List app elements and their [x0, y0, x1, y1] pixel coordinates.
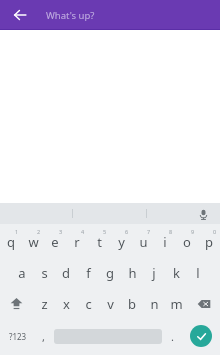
button[interactable]: n	[143, 288, 165, 319]
staticText: t	[97, 233, 102, 251]
staticText: 2	[37, 228, 41, 235]
staticText: p	[205, 233, 213, 251]
staticText: 8	[169, 228, 173, 235]
button[interactable]: ?123	[0, 319, 35, 353]
staticText: g	[106, 264, 114, 282]
button[interactable]: Shift	[0, 288, 33, 319]
button[interactable]: u	[132, 226, 154, 257]
staticText: f	[86, 264, 91, 282]
button[interactable]: g	[99, 257, 121, 288]
staticText: z	[41, 295, 48, 313]
button[interactable]: v	[99, 288, 121, 319]
staticText: 0	[213, 228, 217, 235]
staticText: b	[128, 295, 136, 313]
staticText: l	[196, 264, 200, 282]
staticText: n	[150, 295, 159, 313]
staticText: e	[51, 233, 59, 251]
button[interactable]: p	[198, 226, 220, 257]
button[interactable]: w	[22, 226, 44, 257]
staticText: h	[128, 264, 137, 282]
staticText: q	[7, 233, 15, 251]
staticText: 5	[103, 228, 107, 235]
button[interactable]: h	[121, 257, 143, 288]
staticText: r	[74, 233, 80, 251]
staticText: 9	[191, 228, 195, 235]
button[interactable]: a	[11, 257, 33, 288]
staticText: u	[139, 233, 148, 251]
staticText: d	[62, 264, 70, 282]
staticText: What's up?	[46, 9, 95, 22]
staticText: o	[183, 233, 191, 251]
staticText: 1	[15, 228, 19, 235]
button[interactable]: s	[33, 257, 55, 288]
button[interactable]: t	[88, 226, 110, 257]
button[interactable]: z	[33, 288, 55, 319]
staticText: 4	[81, 228, 85, 235]
button[interactable]: f	[77, 257, 99, 288]
staticText: 7	[147, 228, 151, 235]
staticText: ,	[42, 329, 45, 344]
staticText: 6	[125, 228, 129, 235]
staticText: 3	[59, 228, 63, 235]
button[interactable]: e	[44, 226, 66, 257]
button[interactable]: b	[121, 288, 143, 319]
button[interactable]: y	[110, 226, 132, 257]
staticText: m	[170, 295, 183, 313]
staticText: i	[163, 233, 167, 251]
button[interactable]: c	[77, 288, 99, 319]
staticText: .	[171, 329, 174, 344]
staticText: x	[63, 295, 70, 313]
button[interactable]: Send	[181, 319, 220, 353]
staticText: s	[41, 264, 48, 282]
button[interactable]: o	[176, 226, 198, 257]
button[interactable]: i	[154, 226, 176, 257]
button[interactable]: j	[143, 257, 165, 288]
button[interactable]: Backspace	[187, 288, 220, 319]
button[interactable]: r	[66, 226, 88, 257]
button[interactable]: d	[55, 257, 77, 288]
button[interactable]	[147, 203, 220, 224]
button[interactable]: ,	[35, 319, 52, 353]
button[interactable]: x	[55, 288, 77, 319]
staticText: j	[152, 264, 156, 282]
button[interactable]: q	[0, 226, 22, 257]
button[interactable]: m	[165, 288, 187, 319]
staticText: ?123	[9, 331, 27, 342]
staticText: a	[18, 264, 26, 282]
button[interactable]: .	[164, 319, 181, 353]
button[interactable]: Back	[6, 1, 34, 29]
staticText: w	[28, 233, 39, 251]
staticText: v	[107, 295, 114, 313]
button[interactable]: l	[187, 257, 209, 288]
button[interactable]: Voice input	[193, 204, 213, 224]
button[interactable]: k	[165, 257, 187, 288]
staticText: y	[118, 233, 125, 251]
staticText: k	[173, 264, 180, 282]
staticText: c	[85, 295, 92, 313]
